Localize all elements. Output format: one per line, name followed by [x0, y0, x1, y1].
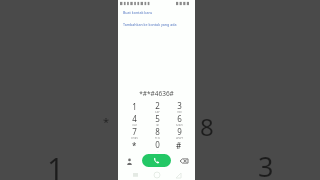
staticText: 2 — [155, 100, 160, 111]
button[interactable]: 5 — [147, 113, 167, 126]
staticText: MNO — [176, 124, 183, 126]
button[interactable]: 1 — [124, 100, 144, 113]
button[interactable]: Back — [173, 170, 183, 180]
staticText: WXYZ — [176, 137, 183, 139]
button[interactable]: Recents — [130, 170, 140, 180]
staticText: 9 — [177, 126, 182, 137]
staticText: + — [157, 150, 159, 152]
staticText: 6 — [177, 113, 182, 124]
staticText: 7 — [132, 126, 137, 137]
staticText: 8 — [155, 126, 160, 137]
staticText: * — [132, 140, 137, 151]
button[interactable]: # — [169, 139, 189, 152]
staticText: 3 — [258, 148, 274, 180]
staticText: 1 — [132, 101, 137, 112]
button[interactable]: * — [124, 139, 144, 152]
staticText: 8 — [200, 110, 214, 143]
button[interactable]: 2 — [147, 100, 167, 113]
staticText: 4 — [132, 113, 137, 124]
button[interactable]: 8 — [147, 126, 167, 139]
button[interactable]: 7 — [124, 126, 144, 139]
button[interactable]: 0 — [147, 139, 167, 152]
staticText: ABC — [155, 111, 160, 113]
staticText: DEF — [177, 111, 182, 113]
staticText: 5 — [155, 113, 160, 124]
staticText: * — [103, 114, 110, 129]
staticText: 3 — [177, 100, 182, 111]
staticText: Buat kontak baru — [123, 10, 153, 15]
staticText: *#*#4636# — [139, 89, 174, 98]
staticText: Tambahkan ke kontak yang ada — [123, 22, 177, 27]
staticText: GHI — [132, 124, 137, 126]
button[interactable]: Home — [152, 170, 162, 180]
staticText: PQRS — [131, 137, 138, 139]
staticText: JKL — [156, 124, 160, 126]
button[interactable]: Call — [142, 154, 171, 167]
button[interactable]: 3 — [169, 100, 189, 113]
button[interactable]: Contacts — [123, 155, 135, 167]
staticText: 1 — [47, 148, 65, 180]
staticText: 0 — [155, 139, 160, 150]
button[interactable]: 9 — [169, 126, 189, 139]
button[interactable]: Backspace — [178, 155, 190, 167]
button[interactable]: 4 — [124, 113, 144, 126]
staticText: TUV — [155, 137, 160, 139]
button[interactable]: 6 — [169, 113, 189, 126]
staticText: # — [176, 140, 182, 151]
